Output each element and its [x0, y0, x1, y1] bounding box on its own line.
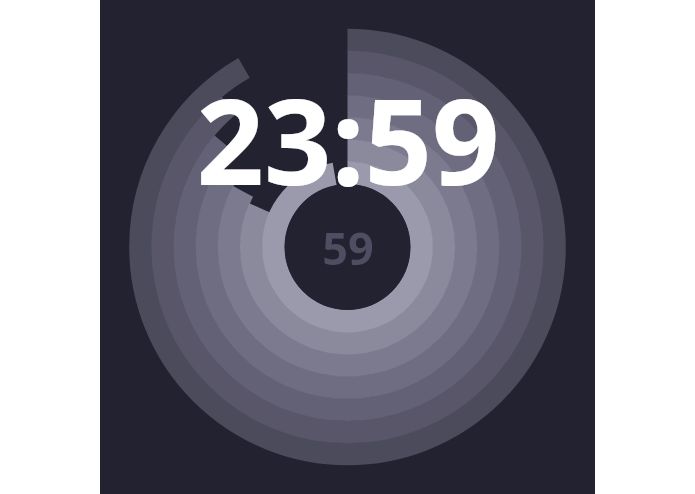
button[interactable]: Radial clock face showing 23:59	[100, 0, 595, 494]
staticText: 23:59	[196, 59, 500, 220]
staticText: 59	[322, 217, 374, 278]
